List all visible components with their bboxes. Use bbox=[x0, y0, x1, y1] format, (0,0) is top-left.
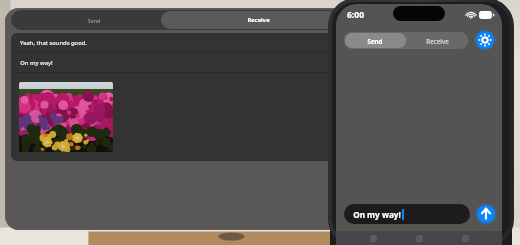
staticText: Receive bbox=[247, 16, 270, 24]
button[interactable]: Yeah, that sounds good. bbox=[11, 33, 341, 52]
staticText: Send bbox=[367, 37, 383, 45]
button[interactable]: On my way! bbox=[11, 53, 341, 72]
button[interactable] bbox=[11, 73, 341, 161]
staticText: On my way! bbox=[353, 209, 401, 220]
button[interactable]: Tab 1 bbox=[350, 231, 396, 245]
button[interactable]: Receive bbox=[176, 10, 341, 30]
button[interactable]: Send bbox=[475, 203, 497, 225]
button[interactable]: Tab 2 bbox=[396, 231, 442, 245]
staticText: Receive bbox=[426, 37, 449, 45]
button[interactable]: Settings bbox=[474, 29, 496, 51]
button[interactable]: On my way! bbox=[344, 204, 470, 224]
button[interactable]: Tab 3 bbox=[442, 231, 488, 245]
staticText: Send bbox=[87, 17, 101, 24]
staticText: On my way! bbox=[20, 59, 53, 67]
button[interactable]: Send bbox=[344, 32, 406, 49]
button[interactable]: Receive bbox=[406, 32, 468, 49]
staticText: 6:00 bbox=[347, 9, 364, 21]
button[interactable]: Send bbox=[11, 10, 176, 30]
staticText: Yeah, that sounds good. bbox=[20, 39, 87, 47]
